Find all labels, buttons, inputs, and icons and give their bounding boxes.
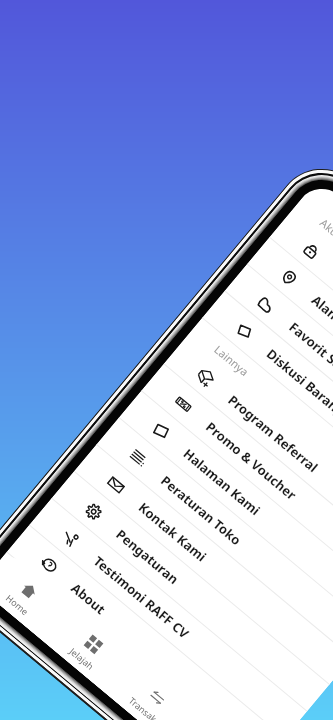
staticText: Ubah Password — [330, 264, 333, 342]
button[interactable]: About — [6, 525, 284, 720]
staticText: Kontak Kami — [135, 498, 211, 566]
staticText: Peraturan Toko — [157, 471, 246, 549]
button[interactable]: Ubah Password — [269, 210, 333, 451]
button[interactable]: Alamat — [247, 237, 333, 478]
button[interactable]: Diskusi Barang — [202, 291, 333, 531]
button[interactable]: Promo & Voucher — [141, 364, 333, 604]
staticText: Home — [4, 591, 31, 617]
staticText: Favorit Saya — [285, 318, 333, 383]
button[interactable]: Kontak Kami — [74, 445, 333, 685]
button[interactable]: Transaksi — [106, 658, 200, 720]
staticText: Akun — [317, 215, 333, 244]
staticText: Diskusi Barang — [263, 345, 333, 421]
button[interactable]: Home — [0, 551, 72, 640]
button[interactable]: Testimoni RAFF CV — [29, 498, 307, 720]
staticText: Jelajah — [67, 645, 97, 672]
staticText: Pengaturan — [112, 525, 183, 588]
staticText: Lainnya — [211, 342, 252, 380]
staticText: Alamat — [308, 291, 333, 335]
button[interactable]: Peraturan Toko — [96, 418, 333, 658]
staticText: Halaman Kami — [180, 445, 264, 519]
staticText: Testimoni RAFF CV — [90, 552, 193, 642]
staticText: Program Referral — [225, 391, 322, 476]
button[interactable]: Program Referral — [163, 337, 333, 577]
button[interactable]: Favorit Saya — [224, 264, 333, 505]
button[interactable]: Jelajah — [42, 604, 136, 694]
staticText: About — [68, 579, 110, 618]
staticText: Transaksi — [126, 694, 165, 720]
staticText: Promo & Voucher — [202, 418, 300, 504]
button[interactable]: Halaman Kami — [118, 391, 333, 631]
button[interactable]: Pengaturan — [51, 472, 329, 712]
